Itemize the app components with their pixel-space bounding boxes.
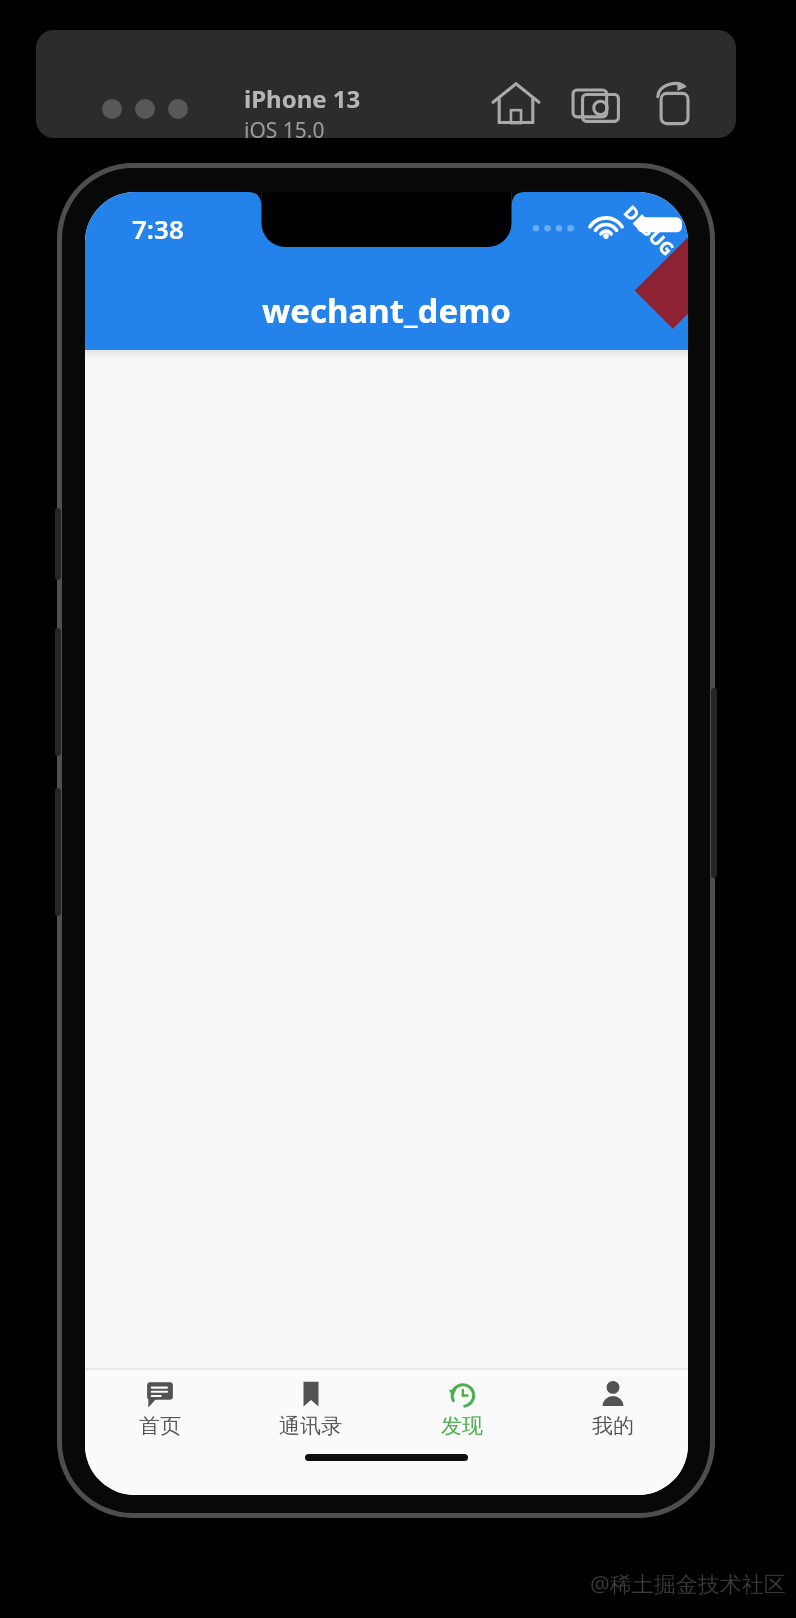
button[interactable]: Window control — [102, 99, 122, 119]
button[interactable]: 我的 — [537, 1370, 688, 1443]
button[interactable]: 发现 — [386, 1370, 537, 1443]
button[interactable]: Window control — [168, 99, 188, 119]
button[interactable]: 通讯录 — [235, 1370, 386, 1443]
staticText: 通讯录 — [279, 1413, 342, 1439]
staticText: 首页 — [139, 1413, 181, 1439]
button[interactable]: Window control — [135, 99, 155, 119]
staticText: 7:38 — [132, 211, 184, 246]
staticText: @稀土掘金技术社区 — [590, 1568, 786, 1598]
staticText: iPhone 13 — [244, 82, 361, 115]
staticText: 我的 — [592, 1413, 634, 1439]
button[interactable]: Rotate — [646, 76, 702, 132]
staticText: DEBUG — [618, 200, 680, 261]
staticText: 发现 — [441, 1413, 483, 1439]
button[interactable]: 首页 — [85, 1370, 235, 1443]
button[interactable]: Home — [488, 76, 544, 132]
staticText: wechant_demo — [85, 288, 688, 333]
staticText: iOS 15.0 — [244, 116, 325, 138]
button[interactable]: Screenshot — [568, 76, 624, 132]
